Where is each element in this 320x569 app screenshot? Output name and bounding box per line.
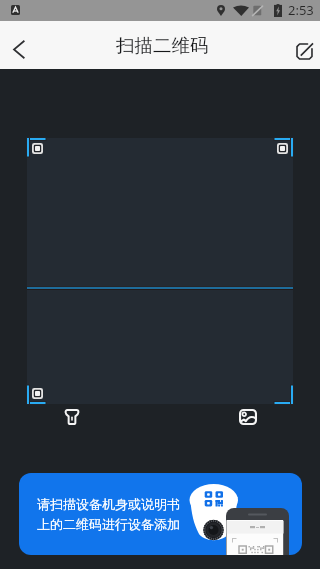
button[interactable]: Flashlight bbox=[54, 399, 90, 435]
button[interactable]: Edit bbox=[272, 21, 320, 69]
button[interactable]: Gallery bbox=[230, 399, 266, 435]
staticText: 请扫描设备机身或说明书 上的二维码进行设备添加 bbox=[37, 496, 180, 533]
staticText: 2:53 bbox=[288, 1, 314, 19]
button[interactable]: 请扫描设备机身或说明书 上的二维码进行设备添加 bbox=[19, 473, 302, 555]
staticText: 扫描二维码 bbox=[116, 34, 209, 57]
button[interactable]: Back bbox=[0, 21, 42, 69]
